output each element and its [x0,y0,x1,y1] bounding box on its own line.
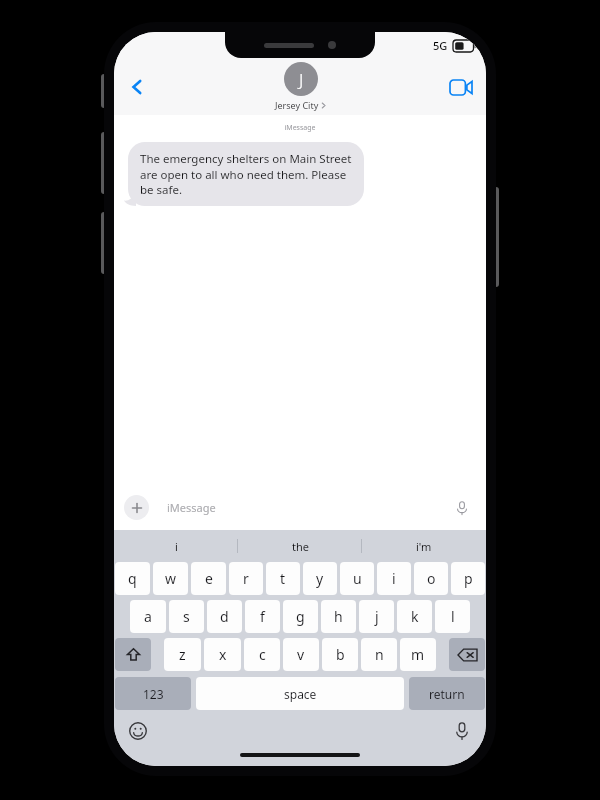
button[interactable]: f [245,600,280,633]
button[interactable]: return [409,677,485,710]
button[interactable]: i'm [362,530,486,562]
staticText: a [144,607,152,626]
staticText: s [183,607,190,626]
button[interactable]: Backspace [449,638,485,671]
button[interactable]: FaceTime video call [444,70,478,104]
staticText: space [284,686,317,702]
button[interactable]: s [169,600,204,633]
button[interactable]: i [114,530,238,562]
staticText: w [165,569,177,588]
staticText: b [336,645,345,664]
staticText: J [299,68,304,91]
button[interactable]: i [377,562,411,595]
staticText: j [375,607,379,626]
staticText: r [243,569,249,588]
staticText: m [411,645,425,664]
button[interactable]: the [238,530,362,562]
staticText: t [280,569,286,588]
staticText: k [411,607,419,626]
button[interactable]: w [153,562,188,595]
staticText: h [334,607,343,626]
button[interactable]: o [414,562,448,595]
staticText: d [220,607,229,626]
button[interactable]: e [191,562,226,595]
button[interactable]: j [359,600,394,633]
staticText: iMessage [167,500,456,515]
staticText: z [179,645,186,664]
button[interactable]: p [451,562,485,595]
staticText: v [297,645,305,664]
button[interactable]: z [164,638,201,671]
staticText: n [375,645,384,664]
button[interactable]: Emoji keyboard [126,719,150,743]
staticText: o [427,569,436,588]
button[interactable]: m [400,638,436,671]
staticText: x [219,645,227,664]
button[interactable]: d [207,600,242,633]
button[interactable]: The emergency shelters on Main Street ar… [128,142,364,206]
button[interactable]: g [283,600,318,633]
staticText: p [464,569,473,588]
button[interactable]: h [321,600,356,633]
button[interactable]: k [397,600,432,633]
button[interactable]: q [115,562,150,595]
button[interactable]: Back [120,70,154,104]
button[interactable]: b [322,638,358,671]
button[interactable]: n [361,638,397,671]
staticText: g [296,607,305,626]
staticText: u [353,569,362,588]
staticText: c [259,645,266,664]
button[interactable]: u [340,562,374,595]
staticText: Jersey City [275,99,319,111]
staticText: f [260,607,265,626]
button[interactable]: x [204,638,241,671]
staticText: q [128,569,137,588]
button[interactable]: a [130,600,166,633]
button[interactable]: Dictation [450,719,474,743]
button[interactable]: iMessage [157,495,476,520]
button[interactable]: y [303,562,337,595]
staticText: 123 [143,686,164,702]
button[interactable]: 123 [115,677,191,710]
button[interactable]: c [244,638,280,671]
button[interactable]: l [435,600,470,633]
staticText: e [205,569,213,588]
button[interactable]: t [266,562,300,595]
button[interactable]: Shift [115,638,151,671]
staticText: l [451,607,455,626]
button[interactable]: v [283,638,319,671]
button[interactable]: r [229,562,263,595]
button[interactable]: J [275,62,326,111]
staticText: the [292,539,309,554]
staticText: i'm [416,539,432,554]
staticText: i [175,539,178,554]
staticText: iMessage [114,123,486,133]
staticText: return [429,686,465,702]
staticText: i [392,569,396,588]
staticText: The emergency shelters on Main Street ar… [140,151,352,197]
staticText: y [316,569,324,588]
staticText: 5G [433,38,448,53]
button[interactable]: space [196,677,404,710]
button[interactable]: Add attachment [124,495,149,520]
